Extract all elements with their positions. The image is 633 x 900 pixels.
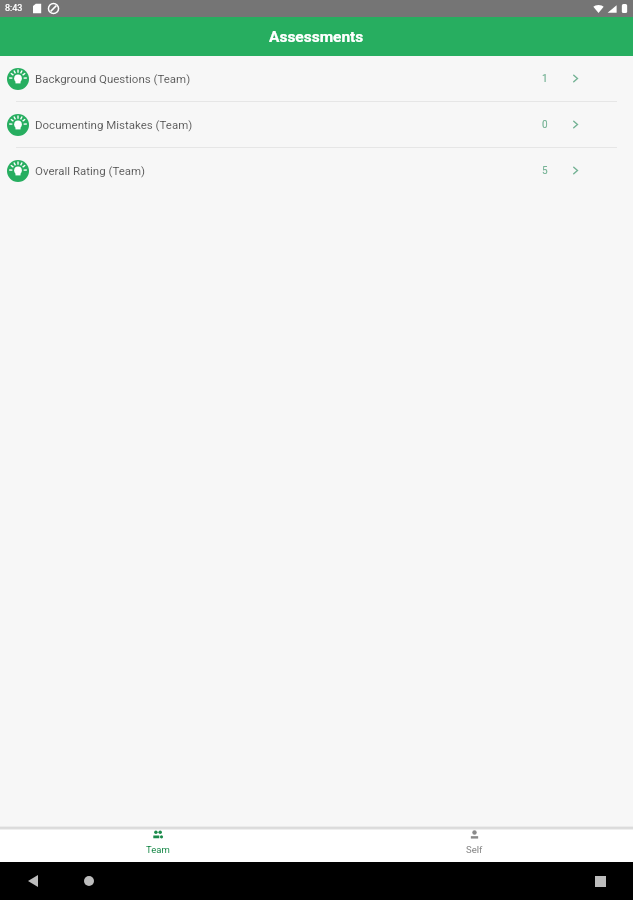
button[interactable]: Self — [316, 830, 633, 855]
staticText: 1 — [542, 73, 548, 85]
staticText: Assessments — [269, 28, 364, 46]
button[interactable]: Background Questions (Team) — [0, 56, 633, 101]
staticText: Overall Rating (Team) — [35, 164, 146, 177]
staticText: 5 — [542, 165, 548, 177]
staticText: Background Questions (Team) — [35, 72, 191, 85]
staticText: Team — [146, 844, 170, 855]
staticText: Self — [466, 844, 483, 855]
button[interactable]: Home — [78, 870, 100, 892]
button[interactable]: Back — [22, 870, 44, 892]
button[interactable]: Overall Rating (Team) — [0, 148, 633, 193]
button[interactable]: Documenting Mistakes (Team) — [0, 102, 633, 147]
staticText: Documenting Mistakes (Team) — [35, 118, 193, 131]
staticText: 8:43 — [5, 3, 23, 14]
button[interactable]: Recent apps — [589, 870, 611, 892]
staticText: 0 — [542, 119, 548, 131]
button[interactable]: Team — [0, 830, 316, 855]
